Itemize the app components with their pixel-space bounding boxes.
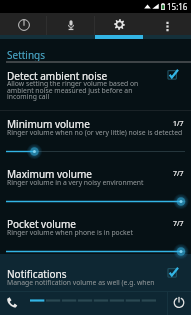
- staticText: Pocket volume: [7, 217, 76, 231]
- staticText: 15:16: [167, 1, 188, 12]
- staticText: Ringer volume when no (or very little) n…: [7, 128, 183, 137]
- staticText: Minimum volume: [7, 117, 90, 131]
- staticText: 7/7: [173, 219, 184, 229]
- button[interactable]: Recordings: [47, 13, 95, 39]
- button[interactable]: Alarms: [0, 13, 47, 39]
- button[interactable]: Detect ambient noise: [7, 69, 108, 83]
- button[interactable]: Notifications: [167, 267, 179, 279]
- staticText: 1/7: [173, 119, 184, 129]
- button[interactable]: Settings: [95, 13, 143, 39]
- staticText: Maximum volume: [7, 167, 92, 181]
- staticText: Settings: [7, 48, 46, 62]
- button[interactable]: More options: [143, 13, 191, 39]
- staticText: 7/7: [173, 169, 184, 179]
- button[interactable]: Notifications: [7, 267, 67, 281]
- button[interactable]: Detect ambient noise: [167, 69, 179, 81]
- staticText: Ringer volume in a very noisy environmen…: [7, 178, 144, 187]
- button[interactable]: Maximum volume: [0, 167, 191, 181]
- button[interactable]: Minimum volume: [0, 117, 191, 131]
- staticText: Allow setting the ringer volume based on…: [7, 79, 139, 101]
- button[interactable]: Ringer mode: [3, 293, 20, 310]
- button[interactable]: Power: [171, 294, 187, 310]
- button[interactable]: Pocket volume: [0, 217, 191, 231]
- staticText: Manage notification volume as well (e.g.…: [7, 278, 155, 287]
- staticText: Ringer volume when phone is in pocket: [7, 228, 133, 237]
